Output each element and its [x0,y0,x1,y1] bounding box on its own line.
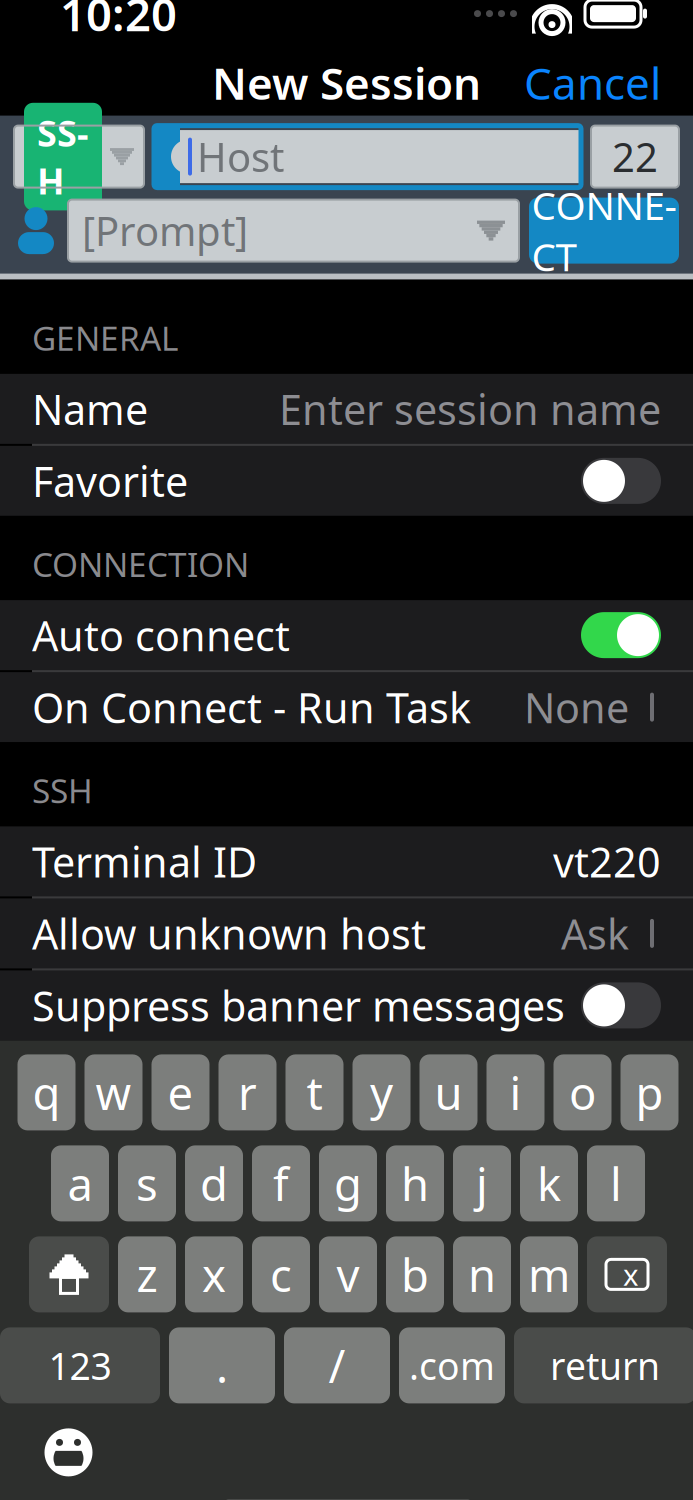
button[interactable]: e [151,1054,209,1130]
button[interactable]: User [14,202,58,260]
staticText: d [200,1153,228,1213]
button[interactable]: g [319,1145,377,1221]
staticText: p [635,1062,663,1122]
staticText: 10:20 [60,0,177,44]
staticText: CONNECTION [32,542,249,586]
staticText: GENERAL [32,316,178,360]
button[interactable]: Emoji keyboard [21,1417,115,1487]
button[interactable]: v [319,1236,377,1312]
button[interactable]: Port 22 [591,126,679,188]
button[interactable]: Cancel [508,43,677,122]
button[interactable]: n [453,1236,511,1312]
button[interactable]: z [118,1236,176,1312]
button[interactable]: f [252,1145,310,1221]
button[interactable]: . [169,1327,275,1403]
staticText: return [550,1341,660,1390]
button[interactable]: x [185,1236,243,1312]
staticText: a [67,1153,92,1213]
staticText: None [524,680,629,735]
button[interactable]: j [453,1145,511,1221]
button[interactable]: / [284,1327,390,1403]
staticText: On Connect - Run Task [32,680,471,735]
button[interactable]: t [285,1054,343,1130]
button[interactable]: w [84,1054,142,1130]
staticText: .com [409,1341,495,1390]
button[interactable]: Protocol SSH [14,126,144,188]
staticText: m [528,1244,570,1304]
staticText: q [32,1062,60,1122]
staticText: i [509,1062,521,1122]
staticText: 22 [612,130,658,183]
button[interactable]: i [486,1054,544,1130]
staticText: z [136,1244,157,1304]
staticText: New Session [212,53,481,112]
button[interactable]: d [185,1145,243,1221]
button[interactable]: b [386,1236,444,1312]
button[interactable]: Shift [29,1236,109,1312]
button[interactable]: y [352,1054,410,1130]
staticText: Favorite [32,453,188,508]
staticText: Auto connect [32,608,290,663]
staticText: Suppress banner messages [32,978,565,1033]
button[interactable]: m [520,1236,578,1312]
button[interactable]: 123 [0,1327,160,1403]
staticText: c [270,1244,292,1304]
staticText: [Prompt] [82,204,248,257]
button[interactable]: Delete [587,1236,667,1312]
button[interactable]: l [587,1145,645,1221]
staticText: Cancel [524,53,661,112]
staticText: n [468,1244,496,1304]
staticText: Name [32,381,148,436]
staticText: Allow unknown host [32,906,426,961]
staticText: x [623,1255,639,1294]
button[interactable]: Prompt [68,200,519,262]
button[interactable]: return [514,1327,693,1403]
staticText: Enter session name [279,381,661,436]
staticText: k [537,1153,561,1213]
staticText: SSH [32,768,93,812]
staticText: Terminal ID [32,834,257,889]
staticText: b [401,1244,429,1304]
button[interactable]: Favorite [0,446,693,516]
button[interactable]: Name [0,374,693,444]
button[interactable]: k [520,1145,578,1221]
staticText: w [95,1062,131,1122]
staticText: l [610,1153,622,1213]
button[interactable]: Suppress banner messages [0,970,693,1040]
staticText: x [202,1244,226,1304]
button[interactable]: Allow unknown host [0,898,693,968]
staticText: r [238,1062,257,1122]
button[interactable]: s [118,1145,176,1221]
button[interactable]: Terminal ID [0,826,693,896]
staticText: o [569,1062,596,1122]
staticText: vt220 [553,834,661,889]
button[interactable]: r [218,1054,276,1130]
staticText: SSH [37,109,89,204]
staticText: CONNECT [531,179,676,282]
button[interactable]: Host [154,126,581,188]
button[interactable]: p [620,1054,678,1130]
staticText: 123 [48,1341,111,1390]
staticText: j [476,1153,488,1213]
button[interactable]: .com [399,1327,505,1403]
staticText: s [136,1153,158,1213]
staticText: v [336,1244,359,1304]
staticText: . [216,1335,228,1395]
button[interactable]: Auto connect [0,600,693,670]
button[interactable]: On Connect - Run Task [0,672,693,742]
button[interactable]: CONNECT [529,198,679,264]
staticText: / [328,1335,345,1395]
staticText: u [434,1062,462,1122]
staticText: h [401,1153,429,1213]
button[interactable]: o [553,1054,611,1130]
button[interactable]: u [419,1054,477,1130]
button[interactable]: a [51,1145,109,1221]
staticText: e [167,1062,193,1122]
staticText: y [370,1062,393,1122]
staticText: f [273,1153,289,1213]
button[interactable]: h [386,1145,444,1221]
staticText: Ask [561,906,629,961]
button[interactable]: q [17,1054,75,1130]
staticText: g [334,1153,362,1213]
button[interactable]: c [252,1236,310,1312]
